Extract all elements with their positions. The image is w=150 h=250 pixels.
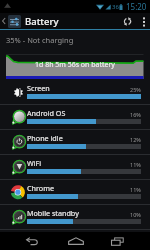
staticText: Chrome <box>27 183 54 193</box>
button[interactable]: Chrome <box>0 180 150 205</box>
staticText: Screen <box>27 83 50 93</box>
button[interactable]: Screen <box>0 80 150 105</box>
staticText: 25% <box>130 86 141 93</box>
staticText: 12% <box>130 136 141 143</box>
staticText: 15:20 <box>126 1 147 12</box>
staticText: WiFi <box>27 158 42 168</box>
staticText: 10% <box>130 211 141 218</box>
button[interactable]: Recent apps <box>95 232 139 250</box>
staticText: 11% <box>130 186 141 193</box>
staticText: 16% <box>130 111 141 118</box>
staticText: Battery <box>25 15 59 28</box>
staticText: Mobile standby <box>27 208 79 218</box>
staticText: 35% - Not charging <box>6 35 74 45</box>
staticText: 1d 8h 5m 56s on battery <box>35 60 115 70</box>
button[interactable]: Phone idle <box>0 130 150 155</box>
staticText: Phone idle <box>27 133 63 143</box>
button[interactable]: More options <box>137 13 150 29</box>
button[interactable]: WiFi <box>0 155 150 180</box>
button[interactable]: Home <box>50 232 95 250</box>
button[interactable]: Mobile standby <box>0 205 150 230</box>
staticText: 36 <box>112 3 119 11</box>
button[interactable]: Refresh <box>117 13 137 29</box>
staticText: Android OS <box>27 108 66 118</box>
button[interactable]: Navigate up <box>0 13 8 29</box>
staticText: 11% <box>130 161 141 168</box>
button[interactable]: Back <box>13 232 50 250</box>
button[interactable]: Android OS <box>0 105 150 130</box>
